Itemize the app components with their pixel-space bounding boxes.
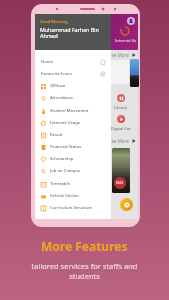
- button[interactable]: Vehicle Sticker: [35, 190, 111, 202]
- button[interactable]: [35, 60, 129, 84]
- button[interactable]: See More: [107, 51, 138, 59]
- button[interactable]: Library: [111, 94, 131, 110]
- staticText: See More: [109, 52, 129, 58]
- staticText: Scholarship: [50, 156, 74, 162]
- staticText: Home: [41, 59, 54, 65]
- staticText: tailored services for staffs and student…: [27, 261, 142, 281]
- button[interactable]: Financial Status: [35, 141, 111, 153]
- staticText: Timetable: [50, 181, 70, 187]
- staticText: Library: [114, 105, 128, 110]
- staticText: See More: [109, 138, 129, 144]
- staticText: SALE: [116, 181, 124, 185]
- button[interactable]: Timetable: [35, 178, 111, 190]
- staticText: Result: [50, 132, 63, 138]
- button[interactable]: Scholarship: [35, 153, 111, 165]
- staticText: Good Morning,: [40, 19, 69, 24]
- button[interactable]: Job on Campus: [35, 165, 111, 177]
- button[interactable]: SALE: [112, 148, 130, 193]
- button[interactable]: Digital Care: [111, 115, 131, 131]
- staticText: Internet Usage: [50, 120, 81, 126]
- staticText: Attendance: [50, 95, 74, 101]
- button[interactable]: Student Movement: [35, 105, 111, 117]
- staticText: Vehicle Sticker: [50, 193, 79, 199]
- staticText: Internet Usage: [115, 38, 136, 43]
- staticText: Favourite Icons: [41, 71, 72, 77]
- staticText: QRScan: [50, 83, 66, 89]
- button[interactable]: Curriculum Structure: [35, 202, 111, 214]
- button[interactable]: Attendance: [35, 92, 111, 104]
- staticText: Curriculum Structure: [50, 205, 93, 211]
- button[interactable]: Add: [120, 198, 133, 211]
- staticText: Muhammad Farhan Bin Ahmad: [40, 26, 99, 40]
- button[interactable]: Profile: [127, 17, 135, 25]
- staticText: More Features: [41, 238, 128, 254]
- staticText: Job on Campus: [50, 168, 81, 174]
- staticText: Student Movement: [50, 108, 89, 114]
- button[interactable]: [130, 59, 139, 87]
- button[interactable]: Favourite Icons: [35, 68, 111, 80]
- staticText: Financial Status: [50, 144, 82, 150]
- button[interactable]: Internet Usage: [35, 117, 111, 129]
- button[interactable]: QRScan: [35, 80, 111, 92]
- staticText: Digital Care: [111, 126, 131, 131]
- button[interactable]: See More: [107, 137, 138, 145]
- button[interactable]: Result: [35, 129, 111, 141]
- button[interactable]: Home: [35, 56, 111, 68]
